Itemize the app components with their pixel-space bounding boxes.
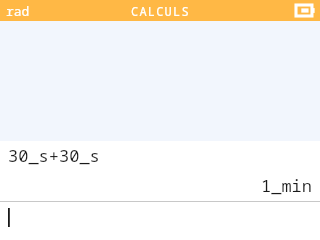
button[interactable]: 30_s+30_s	[0, 141, 320, 201]
staticText: rad	[6, 2, 30, 20]
staticText: 30_s+30_s	[8, 144, 100, 167]
staticText: 1_min	[261, 174, 312, 197]
other: Battery level	[296, 5, 315, 16]
button[interactable]	[0, 202, 320, 240]
staticText: CALCULS	[131, 3, 190, 19]
